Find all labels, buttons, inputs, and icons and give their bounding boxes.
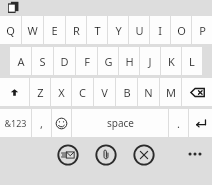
button[interactable]: V (94, 78, 115, 106)
button[interactable]: Close (133, 144, 155, 166)
staticText: Z (37, 85, 44, 100)
staticText: O (177, 23, 186, 38)
staticText: , (40, 116, 43, 131)
button[interactable]: , (32, 109, 51, 137)
staticText: E (51, 23, 58, 38)
button[interactable]: C (72, 78, 93, 106)
staticText: A (17, 54, 25, 69)
button[interactable]: J (140, 47, 160, 75)
button[interactable]: . (169, 109, 188, 137)
staticText: L (189, 54, 195, 69)
staticText: &123 (4, 117, 27, 129)
button[interactable]: More options (184, 143, 206, 165)
button[interactable]: Q (0, 16, 21, 44)
staticText: W (27, 23, 38, 38)
button[interactable]: O (171, 16, 191, 44)
button[interactable]: A (10, 47, 31, 75)
button[interactable]: X (51, 78, 71, 106)
staticText: J (148, 54, 152, 69)
button[interactable]: E (44, 16, 65, 44)
staticText: F (84, 54, 90, 69)
button[interactable]: R (66, 16, 86, 44)
button[interactable]: H (119, 47, 139, 75)
staticText: Q (6, 23, 15, 38)
button[interactable]: Enter (189, 109, 212, 137)
staticText: space (107, 116, 134, 130)
staticText: Y (115, 23, 122, 38)
button[interactable]: G (98, 47, 118, 75)
button[interactable]: Document (7, 1, 20, 14)
button[interactable]: Send (57, 144, 79, 166)
button[interactable]: T (87, 16, 107, 44)
button[interactable]: Emoji (52, 109, 71, 137)
button[interactable]: &123 (0, 109, 31, 137)
button[interactable]: Backspace (182, 78, 212, 106)
button[interactable]: L (182, 47, 202, 75)
button[interactable]: F (76, 47, 97, 75)
button[interactable]: N (138, 78, 159, 106)
staticText: M (166, 85, 176, 100)
button[interactable]: K (161, 47, 181, 75)
staticText: H (125, 54, 134, 69)
button[interactable]: S (32, 47, 53, 75)
staticText: G (104, 54, 113, 69)
staticText: P (199, 23, 206, 38)
staticText: S (39, 54, 46, 69)
staticText: C (79, 85, 86, 100)
staticText: B (123, 85, 131, 100)
button[interactable]: B (116, 78, 137, 106)
staticText: I (158, 23, 162, 38)
button[interactable]: space (72, 109, 168, 137)
button[interactable]: P (192, 16, 212, 44)
staticText: X (58, 85, 65, 100)
button[interactable]: Shift (0, 78, 29, 106)
button[interactable]: I (150, 16, 170, 44)
staticText: U (135, 23, 144, 38)
staticText: R (73, 23, 80, 38)
button[interactable]: Z (30, 78, 50, 106)
staticText: T (94, 23, 101, 38)
button[interactable]: U (129, 16, 149, 44)
button[interactable]: D (54, 47, 75, 75)
button[interactable]: Attach (95, 144, 117, 166)
staticText: V (101, 85, 108, 100)
button[interactable]: W (22, 16, 43, 44)
staticText: K (168, 54, 175, 69)
button[interactable]: M (160, 78, 181, 106)
staticText: . (177, 116, 180, 131)
button[interactable]: Y (108, 16, 128, 44)
staticText: D (60, 54, 69, 69)
staticText: N (144, 85, 153, 100)
